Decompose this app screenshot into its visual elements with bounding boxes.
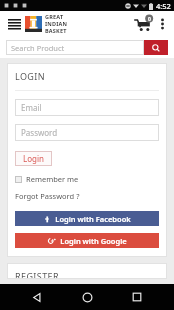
button[interactable]: Back (24, 284, 50, 310)
staticText: 0 (148, 16, 151, 23)
staticText: 4:52 (156, 1, 171, 11)
button[interactable]: Login with Google (15, 233, 159, 248)
staticText: Login (23, 153, 44, 164)
button[interactable]: More options (156, 14, 168, 34)
button[interactable]: Email (15, 99, 159, 116)
staticText: INDIAN (45, 20, 68, 27)
staticText: GREAT (45, 13, 64, 20)
button[interactable]: Search (144, 40, 168, 55)
staticText: Search Product (11, 43, 65, 53)
staticText: Remember me (26, 174, 79, 184)
staticText: BASKET (45, 27, 67, 34)
staticText: Email (21, 102, 42, 113)
button[interactable]: Menu (6, 15, 22, 33)
button[interactable]: Search Product (6, 40, 144, 55)
button[interactable]: Remember me (15, 174, 79, 184)
button[interactable]: Forgot Password ? (15, 191, 80, 201)
button[interactable]: Home (74, 284, 100, 310)
button[interactable]: Cart (132, 14, 154, 34)
staticText: Password (21, 127, 58, 138)
staticText: LOGIN (15, 70, 46, 82)
staticText: Login with Google (60, 236, 127, 246)
button[interactable]: Recent apps (124, 284, 150, 310)
staticText: Login with Facebook (55, 214, 131, 224)
button[interactable]: Login (15, 151, 52, 166)
button[interactable]: Password (15, 124, 159, 141)
staticText: REGISTER (15, 270, 59, 279)
button[interactable]: Login with Facebook (15, 211, 159, 226)
